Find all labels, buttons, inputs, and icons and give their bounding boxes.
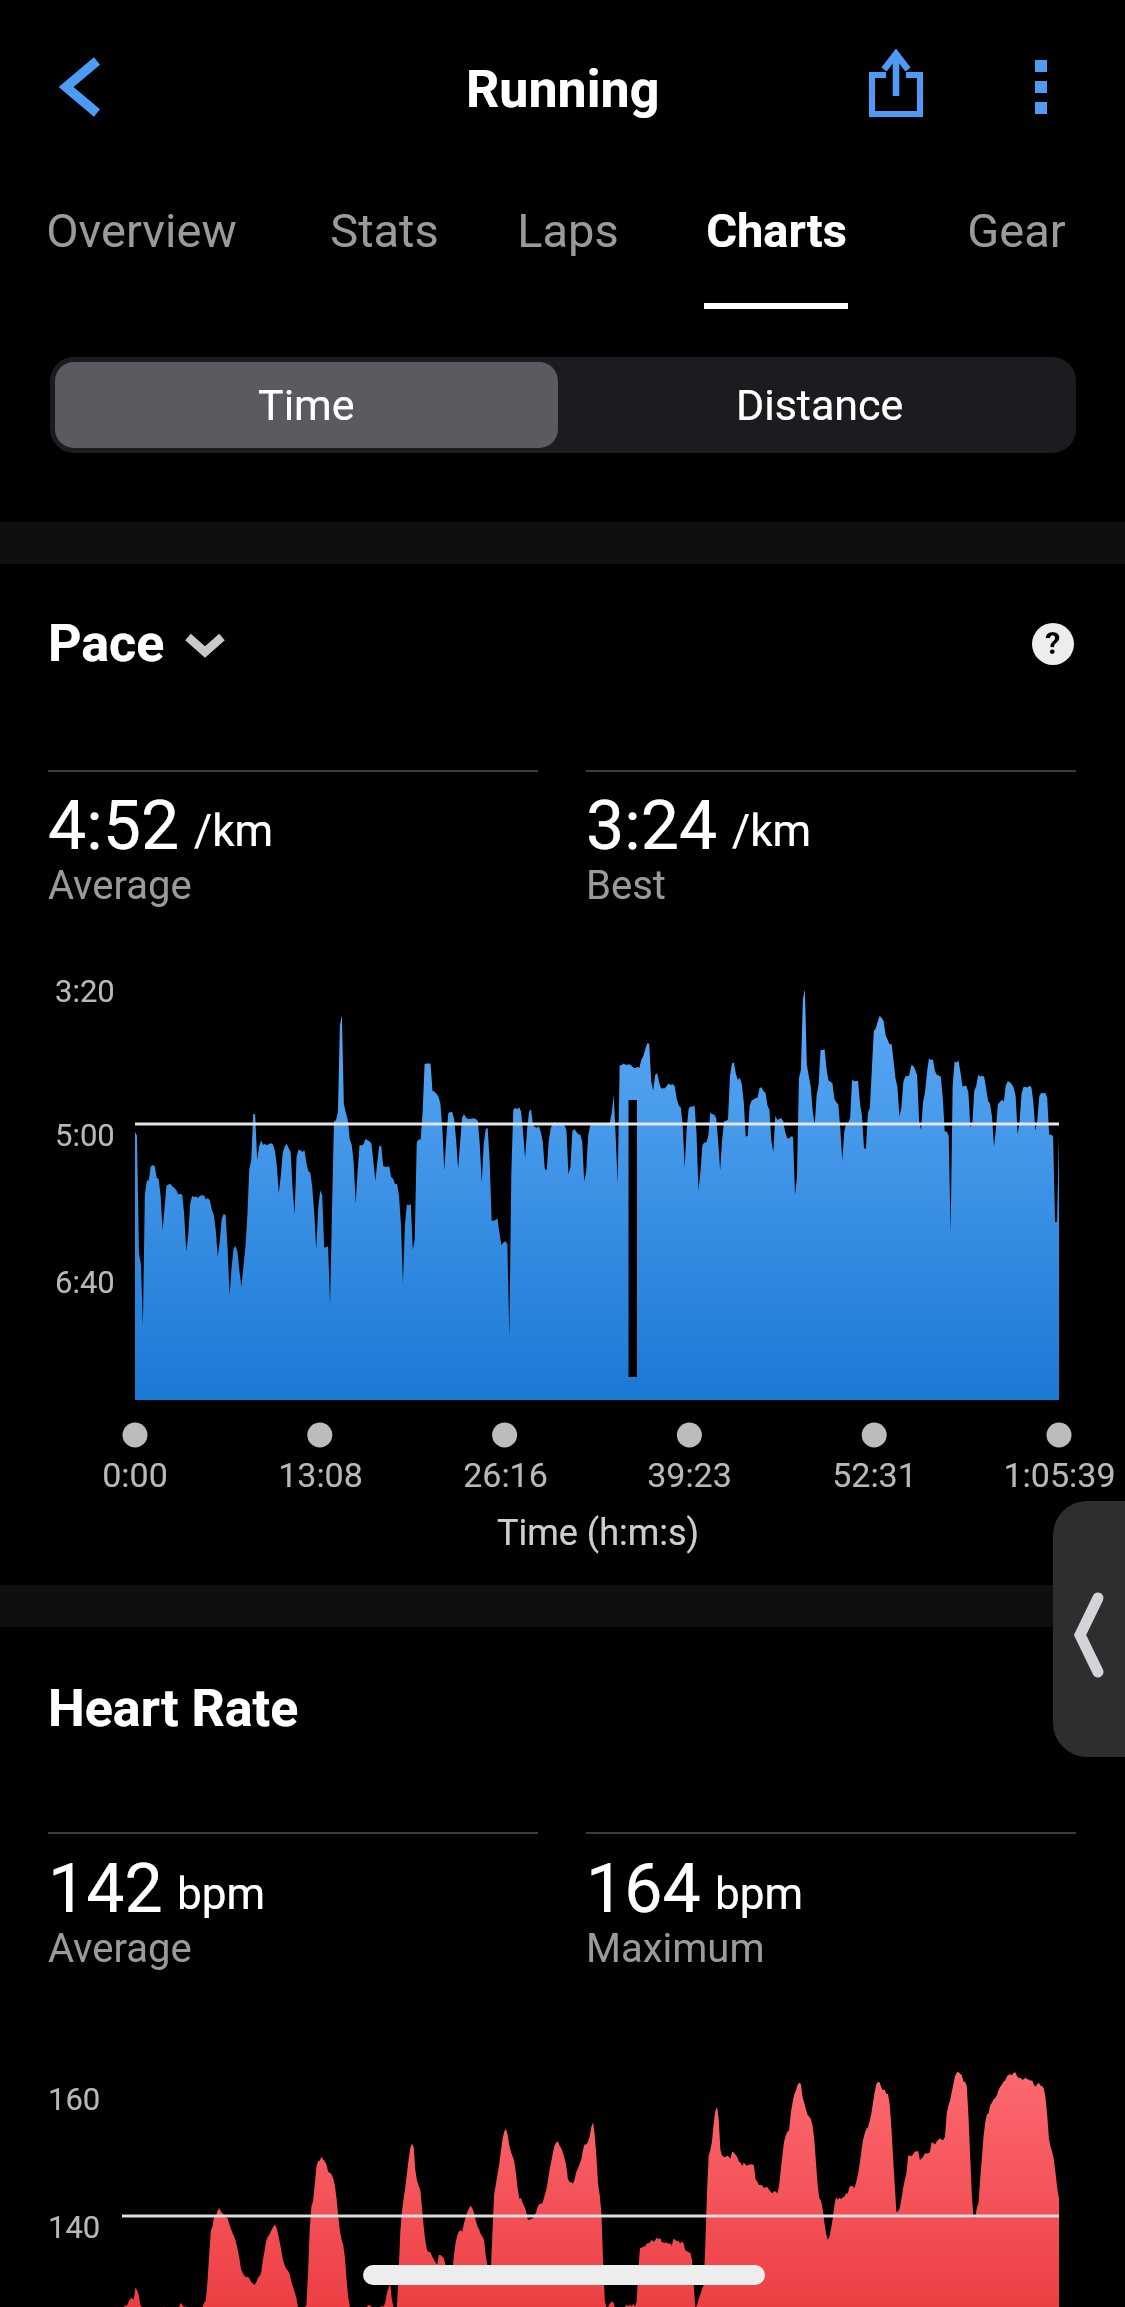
button[interactable]: Share <box>843 31 949 137</box>
button[interactable]: Stats <box>264 184 504 276</box>
staticText: Average <box>48 1925 192 1972</box>
button[interactable]: Back <box>28 34 134 140</box>
button[interactable]: Help <box>1032 623 1074 665</box>
staticText: Maximum <box>586 1925 765 1972</box>
staticText: Laps <box>517 203 619 258</box>
staticText: Stats <box>330 203 439 258</box>
staticText: 160 <box>48 2081 101 2117</box>
staticText: 3:20 <box>55 973 115 1009</box>
staticText: 140 <box>48 2209 101 2245</box>
staticText: 3:24 <box>586 786 718 866</box>
button[interactable]: Distance <box>563 357 1076 453</box>
staticText: 26:16 <box>463 1455 548 1495</box>
staticText: 39:23 <box>647 1455 732 1495</box>
staticText: bpm <box>715 1868 803 1920</box>
button[interactable]: Laps <box>448 184 688 276</box>
staticText: /km <box>194 805 274 857</box>
staticText: /km <box>732 805 812 857</box>
staticText: Time (h:m:s) <box>497 1512 700 1554</box>
staticText: Pace <box>48 613 165 674</box>
staticText: Charts <box>706 203 847 258</box>
staticText: 1:05:39 <box>1003 1455 1116 1495</box>
staticText: Running <box>466 59 660 120</box>
staticText: Best <box>586 862 666 909</box>
staticText: bpm <box>177 1868 265 1920</box>
staticText: Distance <box>736 380 904 430</box>
button[interactable]: Pace <box>48 613 227 674</box>
button[interactable]: Overview <box>21 184 261 276</box>
button[interactable]: More options <box>988 34 1094 140</box>
staticText: Average <box>48 862 192 909</box>
staticText: ? <box>1045 625 1061 661</box>
staticText: 142 <box>48 1849 163 1929</box>
staticText: 13:08 <box>278 1455 363 1495</box>
staticText: Overview <box>46 203 237 258</box>
staticText: Time <box>258 380 355 430</box>
staticText: 4:52 <box>48 786 180 866</box>
staticText: Heart Rate <box>48 1678 299 1739</box>
button[interactable]: Edge panel <box>1053 1501 1125 1757</box>
button[interactable]: Gear <box>896 184 1125 276</box>
staticText: 6:40 <box>55 1264 115 1300</box>
staticText: 164 <box>586 1849 701 1929</box>
staticText: 5:00 <box>55 1117 115 1153</box>
staticText: Gear <box>967 203 1066 258</box>
button[interactable]: Charts <box>656 184 896 276</box>
staticText: 0:00 <box>102 1455 168 1495</box>
button[interactable]: Time <box>55 362 558 448</box>
staticText: 52:31 <box>832 1455 917 1495</box>
